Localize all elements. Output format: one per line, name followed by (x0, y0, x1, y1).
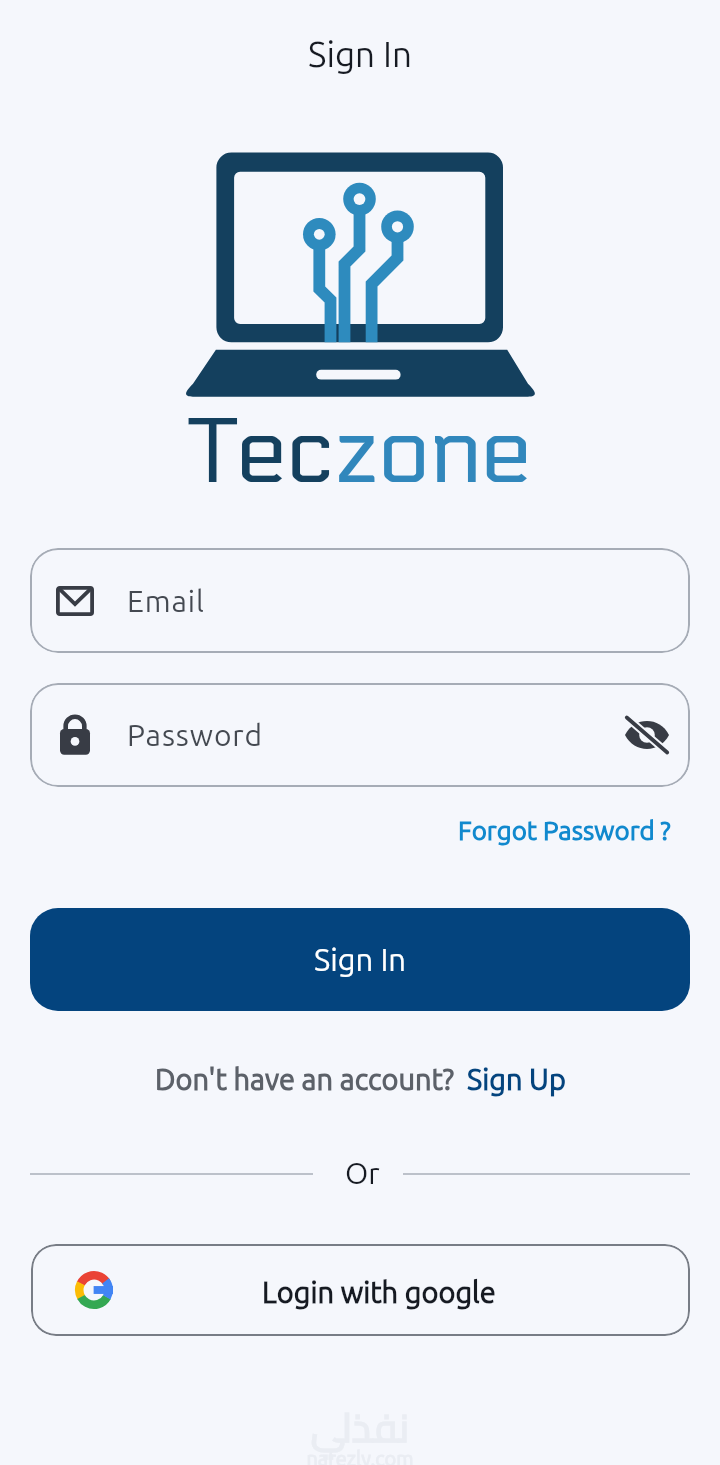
staticText: Sign In (0, 34, 720, 73)
button[interactable]: Show password (618, 706, 676, 764)
button[interactable]: Sign In (30, 908, 690, 1011)
staticText: Password (127, 718, 618, 752)
staticText: Don't have an account? (155, 1063, 455, 1096)
staticText: Login with google (262, 1276, 496, 1309)
button[interactable]: Sign Up (467, 1063, 566, 1096)
staticText: Forgot Password ? (458, 816, 671, 845)
staticText: zone (335, 398, 532, 507)
staticText: Or (345, 1156, 380, 1190)
staticText: Sign Up (467, 1063, 566, 1096)
staticText: Sign In (314, 942, 407, 977)
button[interactable]: Password (30, 683, 690, 787)
staticText: Email (127, 584, 205, 618)
button[interactable]: Login with google (31, 1244, 690, 1336)
staticText: Tec (189, 398, 335, 507)
button[interactable]: Email (30, 548, 690, 653)
button[interactable]: Forgot Password ? (452, 808, 677, 853)
